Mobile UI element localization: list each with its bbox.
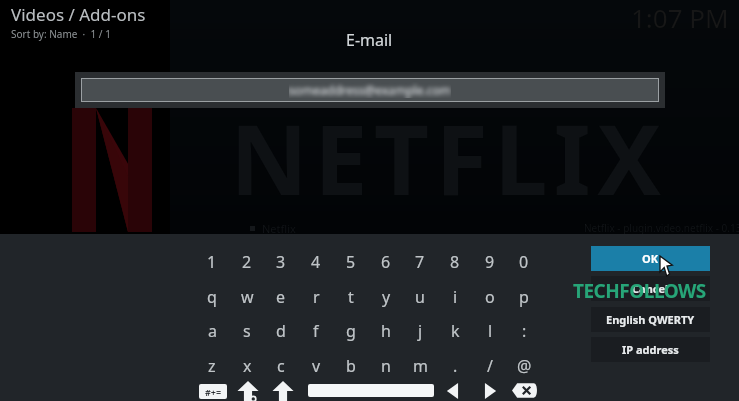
button[interactable]: 4 <box>300 246 332 277</box>
staticText: IP address <box>622 342 679 357</box>
staticText: 8 <box>450 251 460 273</box>
staticText: 7 <box>415 251 425 273</box>
staticText: TECHFOLLOWS <box>573 278 706 304</box>
staticText: x <box>243 355 252 377</box>
button[interactable]: 5 <box>335 246 367 277</box>
button[interactable]: w <box>231 281 263 312</box>
staticText: y <box>382 286 391 308</box>
button[interactable]: t <box>335 281 367 312</box>
button[interactable]: p <box>508 281 540 312</box>
staticText: g <box>346 320 356 342</box>
button[interactable]: c <box>265 350 297 381</box>
button[interactable]: Cursor right <box>481 383 499 399</box>
button[interactable]: Symbols <box>199 384 227 399</box>
button[interactable]: q <box>196 281 228 312</box>
button[interactable]: English QWERTY <box>591 307 710 332</box>
button[interactable]: Caps lock <box>236 380 260 401</box>
staticText: 4 <box>311 251 321 273</box>
button[interactable]: 0 <box>508 246 540 277</box>
button[interactable]: i <box>439 281 471 312</box>
staticText: d <box>276 320 286 342</box>
staticText: E-mail <box>346 29 393 51</box>
button[interactable]: 3 <box>265 246 297 277</box>
button[interactable]: Backspace <box>512 382 538 399</box>
button[interactable]: s <box>231 315 263 346</box>
staticText: 0 <box>519 251 529 273</box>
button[interactable]: OK <box>591 246 710 271</box>
button[interactable]: 8 <box>439 246 471 277</box>
button[interactable]: / <box>474 350 506 381</box>
staticText: : <box>522 320 527 342</box>
button[interactable]: x <box>231 350 263 381</box>
staticText: Netflix <box>262 221 296 236</box>
staticText: f <box>313 320 319 342</box>
button[interactable]: 1 <box>196 246 228 277</box>
button[interactable]: Cancel <box>591 276 710 301</box>
staticText: Sort by: Name · 1 / 1 <box>11 27 111 41</box>
staticText: l <box>488 320 493 342</box>
button[interactable]: o <box>474 281 506 312</box>
button[interactable]: someaddress@example.com <box>81 78 659 102</box>
staticText: 5 <box>346 251 356 273</box>
staticText: Videos / Add-ons <box>11 3 146 26</box>
staticText: v <box>312 355 321 377</box>
staticText: Cancel <box>632 281 669 296</box>
button[interactable]: 2 <box>231 246 263 277</box>
staticText: n <box>381 355 391 377</box>
button[interactable]: k <box>439 315 471 346</box>
button[interactable]: e <box>265 281 297 312</box>
button[interactable]: l <box>474 315 506 346</box>
staticText: k <box>451 320 460 342</box>
staticText: 1 <box>207 251 217 273</box>
button[interactable]: m <box>404 350 436 381</box>
button[interactable]: a <box>196 315 228 346</box>
button[interactable]: 9 <box>474 246 506 277</box>
staticText: . <box>453 355 458 377</box>
staticText: 1:07 PM <box>631 0 729 35</box>
staticText: u <box>415 286 425 308</box>
staticText: someaddress@example.com <box>289 82 451 98</box>
staticText: m <box>413 355 428 377</box>
button[interactable]: r <box>300 281 332 312</box>
button[interactable]: z <box>196 350 228 381</box>
button[interactable]: n <box>370 350 402 381</box>
button[interactable]: Space <box>308 384 434 397</box>
button[interactable]: d <box>265 315 297 346</box>
button[interactable]: v <box>300 350 332 381</box>
button[interactable]: b <box>335 350 367 381</box>
staticText: q <box>207 286 217 308</box>
staticText: e <box>276 286 286 308</box>
staticText: r <box>313 286 320 308</box>
staticText: 2 <box>242 251 252 273</box>
button[interactable]: h <box>370 315 402 346</box>
staticText: @ <box>517 355 532 377</box>
staticText: 9 <box>485 251 495 273</box>
button[interactable]: f <box>300 315 332 346</box>
staticText: s <box>243 320 251 342</box>
button[interactable]: 7 <box>404 246 436 277</box>
staticText: t <box>348 286 354 308</box>
button[interactable]: u <box>404 281 436 312</box>
staticText: b <box>346 355 356 377</box>
button[interactable]: Cursor left <box>444 383 462 399</box>
button[interactable]: IP address <box>591 337 710 362</box>
staticText: o <box>485 286 495 308</box>
staticText: NETFLIX <box>230 92 668 210</box>
button[interactable]: : <box>508 315 540 346</box>
staticText: / <box>487 355 493 377</box>
staticText: #+= <box>205 386 222 398</box>
staticText: z <box>208 355 216 377</box>
staticText: OK <box>642 251 659 266</box>
staticText: i <box>453 286 458 308</box>
button[interactable]: Shift <box>271 380 295 401</box>
button[interactable]: @ <box>508 350 540 381</box>
button[interactable]: j <box>404 315 436 346</box>
staticText: 3 <box>276 251 286 273</box>
staticText: a <box>208 320 217 342</box>
button[interactable]: y <box>370 281 402 312</box>
staticText: j <box>418 320 423 342</box>
button[interactable]: 6 <box>370 246 402 277</box>
button[interactable]: g <box>335 315 367 346</box>
button[interactable]: . <box>439 350 471 381</box>
staticText: h <box>381 320 391 342</box>
